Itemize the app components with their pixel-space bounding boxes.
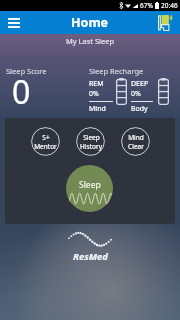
staticText: DEEP [131,79,149,89]
staticText: Mind [89,104,106,114]
staticText: REM [89,79,104,89]
staticText: S+ [42,133,50,142]
button[interactable]: S+ [31,127,60,156]
staticText: 0% [131,89,141,99]
staticText: History [80,142,102,151]
staticText: Sleep [79,179,101,191]
staticText: Clear [128,142,144,151]
staticText: Sleep Score [6,66,47,76]
button[interactable]: Sleep [66,165,113,212]
staticText: ResMed [73,250,108,263]
staticText: 67% [140,1,153,10]
staticText: Sleep [83,133,100,142]
staticText: Mentor [34,142,57,151]
staticText: My Last Sleep [66,36,115,46]
staticText: Home [71,14,109,31]
button[interactable]: Connected device [155,12,177,34]
button[interactable]: Open navigation menu [4,13,24,33]
button[interactable]: Sleep [76,127,105,156]
staticText: 0 [12,70,31,114]
staticText: 20:46 [161,1,178,10]
staticText: Sleep Recharge [89,66,144,76]
staticText: Mind [128,133,144,142]
staticText: Body [131,104,148,114]
button[interactable]: Mind [121,127,150,156]
staticText: 0% [89,89,99,99]
